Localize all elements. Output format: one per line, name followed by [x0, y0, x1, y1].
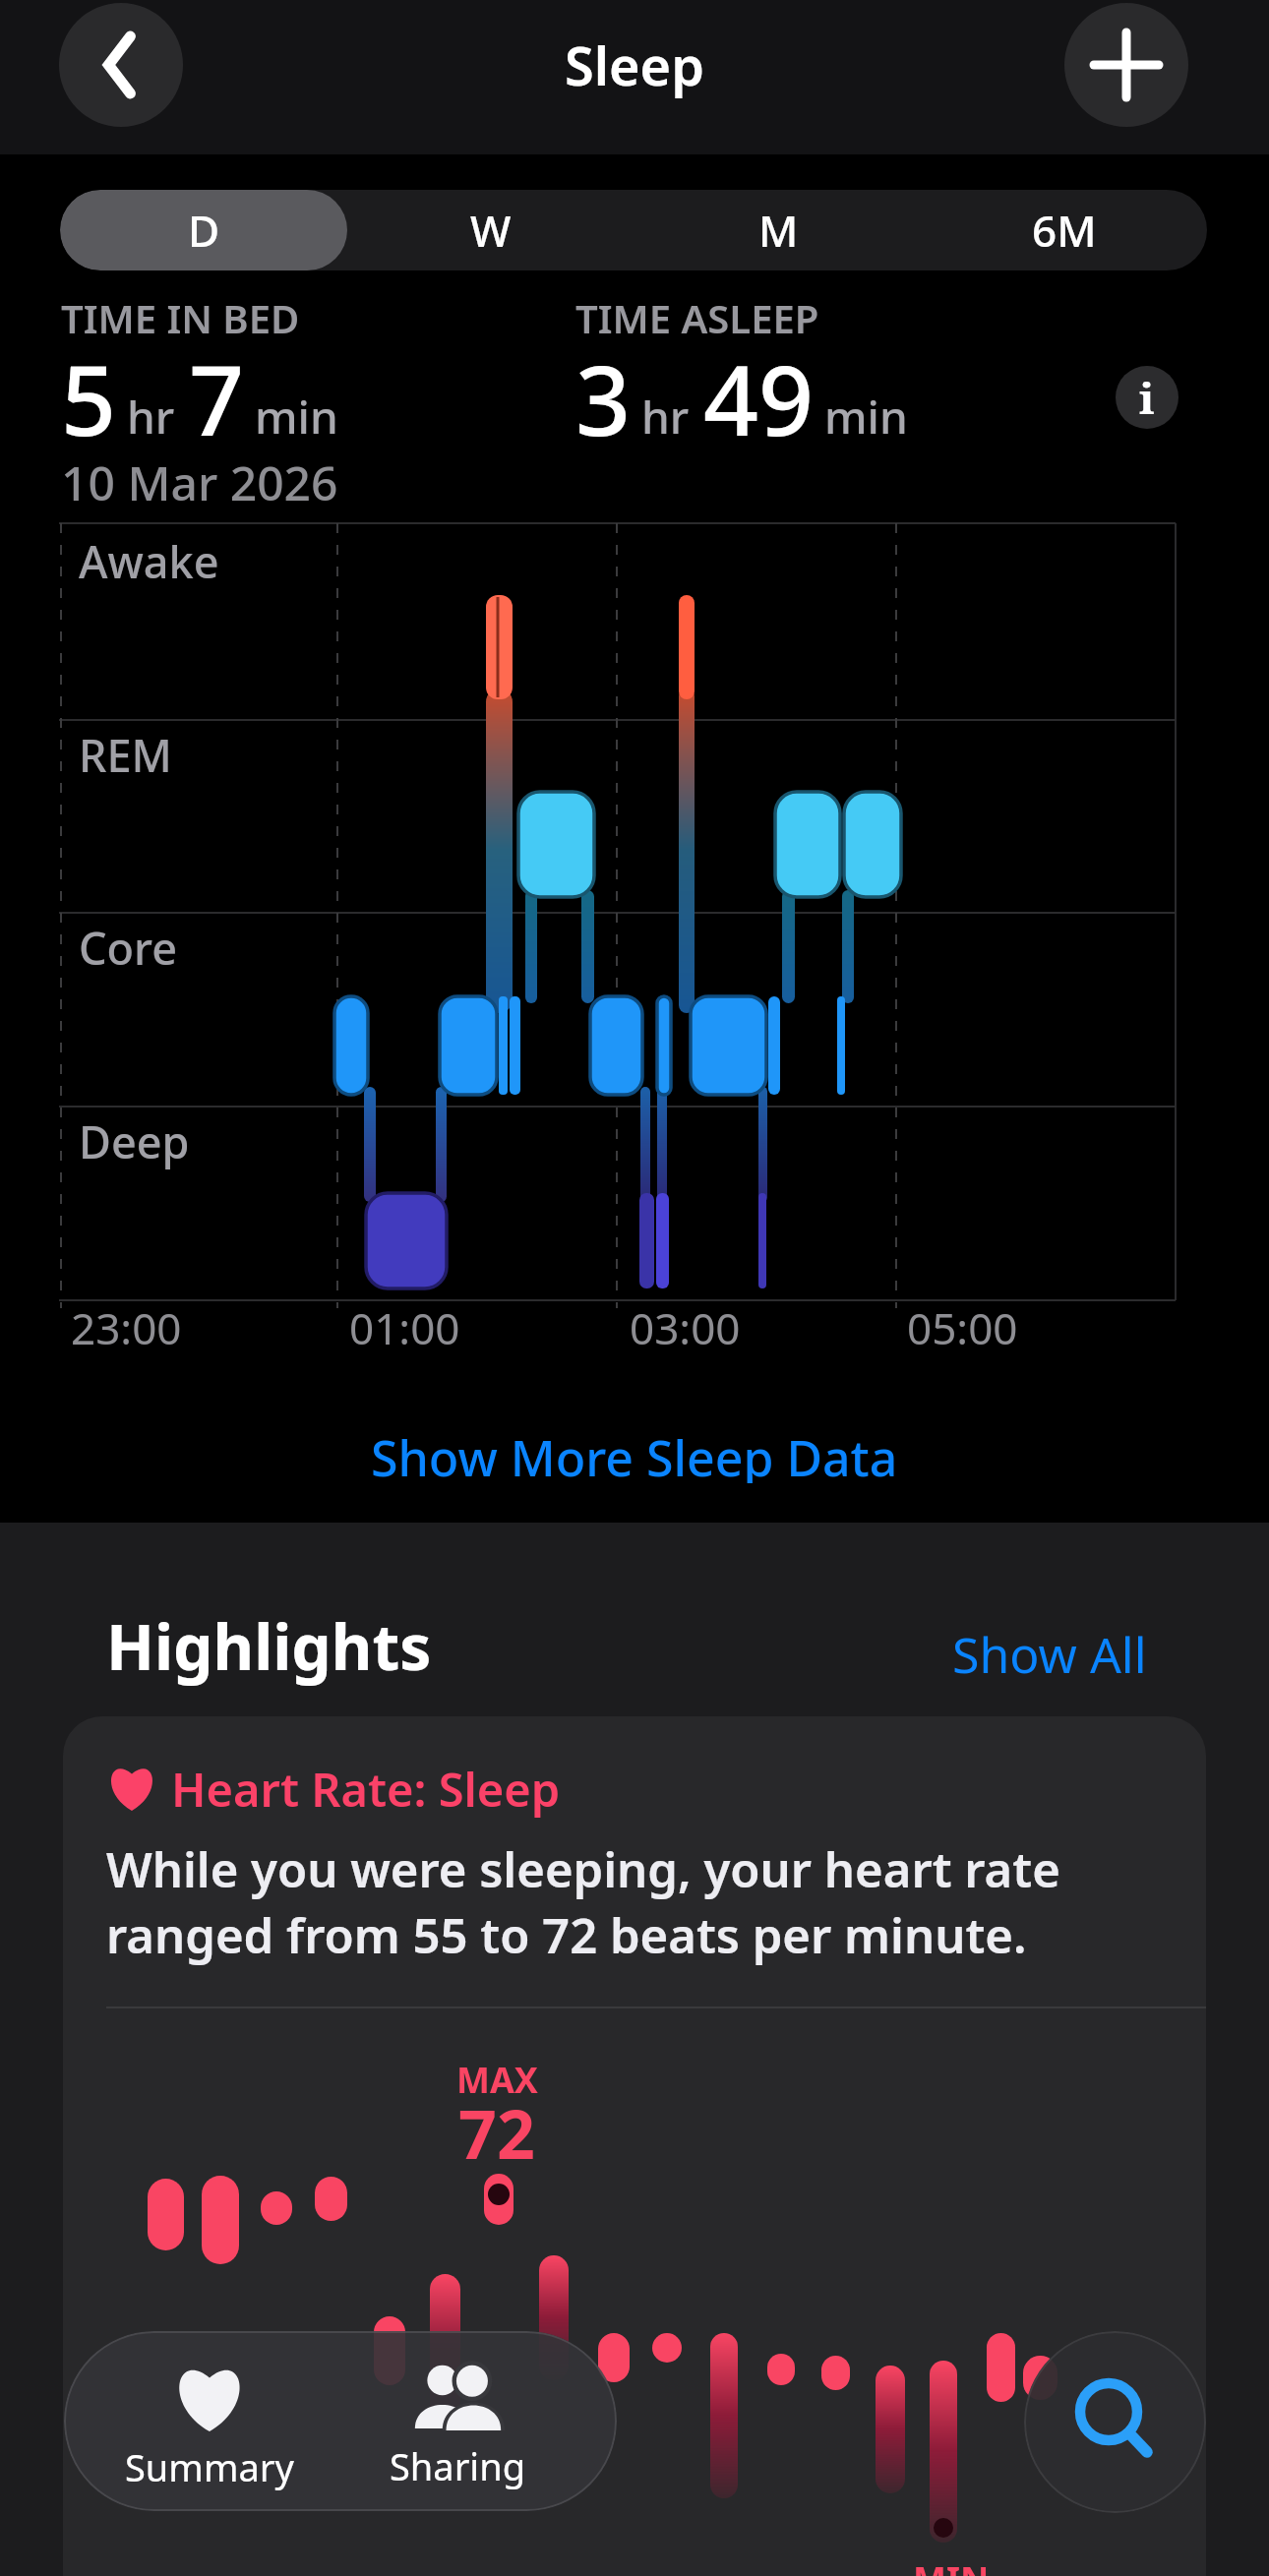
- staticText: min: [255, 386, 338, 448]
- button[interactable]: D: [60, 190, 347, 270]
- staticText: Sharing: [390, 2440, 526, 2491]
- staticText: D: [188, 201, 220, 260]
- staticText: 01:00: [349, 1298, 460, 1357]
- staticText: TIME ASLEEP: [575, 291, 819, 344]
- staticText: Summary: [125, 2441, 294, 2492]
- button[interactable]: W: [347, 190, 634, 270]
- staticText: 03:00: [630, 1298, 741, 1357]
- staticText: MAX: [456, 2056, 538, 2104]
- staticText: 23:00: [71, 1298, 182, 1357]
- button[interactable]: Sharing: [339, 2331, 575, 2511]
- button[interactable]: [1024, 2331, 1206, 2513]
- staticText: 49: [703, 332, 815, 463]
- button[interactable]: 6M: [922, 190, 1207, 270]
- staticText: Awake: [79, 531, 219, 591]
- staticText: REM: [79, 725, 172, 785]
- staticText: 05:00: [907, 1298, 1018, 1357]
- staticText: 3: [575, 332, 632, 463]
- staticText: 6M: [1032, 201, 1097, 260]
- staticText: While you were sleeping, your heart rate…: [106, 1836, 1060, 1967]
- staticText: hr: [641, 386, 690, 448]
- button[interactable]: Summary: [91, 2331, 328, 2511]
- staticText: Core: [79, 918, 178, 978]
- staticText: hr: [127, 386, 175, 448]
- staticText: Deep: [79, 1111, 190, 1171]
- button[interactable]: Show More Sleep Data: [0, 1424, 1269, 1483]
- staticText: 10 Mar 2026: [61, 450, 338, 514]
- button[interactable]: i: [1116, 366, 1178, 429]
- button[interactable]: Show All: [952, 1621, 1147, 1688]
- button[interactable]: [1064, 3, 1188, 127]
- staticText: Show More Sleep Data: [371, 1424, 898, 1483]
- staticText: M: [758, 201, 799, 260]
- button[interactable]: Heart Rate: Sleep: [63, 1716, 1206, 2576]
- staticText: TIME IN BED: [61, 291, 300, 344]
- staticText: Highlights: [106, 1603, 432, 1689]
- staticText: W: [470, 201, 512, 260]
- staticText: 5: [61, 332, 117, 463]
- staticText: 72: [458, 2087, 535, 2179]
- staticText: Show All: [952, 1621, 1147, 1688]
- staticText: Sleep: [565, 29, 704, 101]
- staticText: i: [1139, 368, 1155, 427]
- staticText: Heart Rate: Sleep: [171, 1758, 561, 1821]
- staticText: MIN: [913, 2555, 990, 2576]
- button[interactable]: M: [634, 190, 922, 270]
- button[interactable]: [59, 3, 183, 127]
- staticText: 7: [189, 332, 245, 463]
- staticText: min: [824, 386, 908, 448]
